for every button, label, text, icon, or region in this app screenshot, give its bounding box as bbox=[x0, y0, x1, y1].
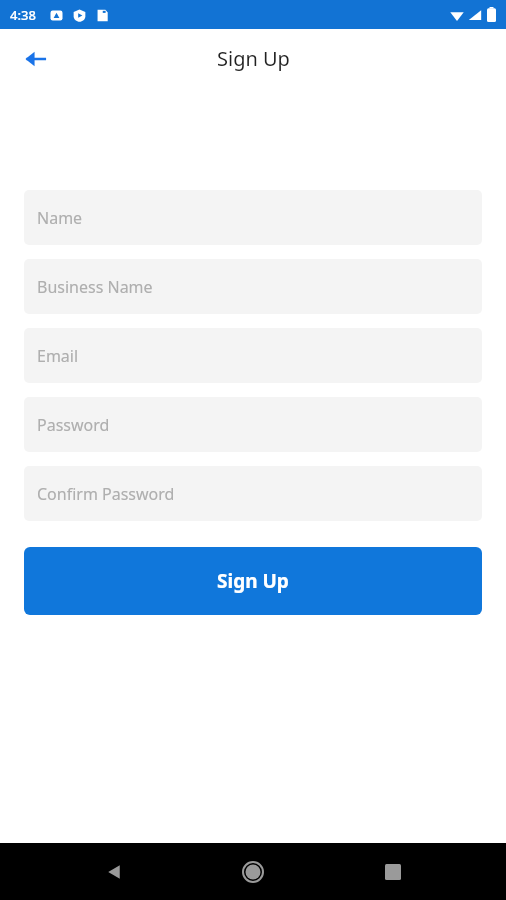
button[interactable]: Back bbox=[88, 846, 140, 898]
button[interactable]: Name bbox=[24, 190, 482, 245]
staticText: Name bbox=[37, 207, 83, 229]
staticText: Sign Up bbox=[217, 568, 289, 594]
staticText: 4:38 bbox=[10, 6, 36, 24]
button[interactable]: Password bbox=[24, 397, 482, 452]
button[interactable]: Email bbox=[24, 328, 482, 383]
staticText: Email bbox=[37, 345, 79, 367]
button[interactable]: Home bbox=[227, 846, 279, 898]
staticText: Sign Up bbox=[217, 45, 290, 72]
staticText: Business Name bbox=[37, 276, 153, 298]
staticText: Confirm Password bbox=[37, 483, 175, 505]
button[interactable]: Sign Up bbox=[24, 547, 482, 615]
staticText: Password bbox=[37, 414, 110, 436]
button[interactable]: Confirm Password bbox=[24, 466, 482, 521]
button[interactable]: Recents bbox=[367, 846, 419, 898]
button[interactable]: Back bbox=[14, 37, 58, 81]
button[interactable]: Business Name bbox=[24, 259, 482, 314]
